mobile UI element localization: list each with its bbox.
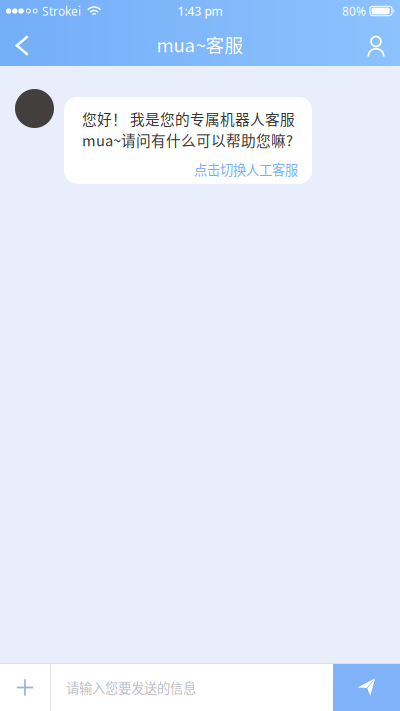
- button[interactable]: Add attachment: [0, 664, 50, 711]
- staticText: 请输入您要发送的信息: [66, 678, 196, 697]
- staticText: 1:43 pm: [177, 3, 222, 19]
- button[interactable]: Send: [333, 664, 400, 711]
- button[interactable]: Back: [0, 22, 44, 66]
- button[interactable]: Account: [354, 22, 398, 66]
- staticText: 点击切换人工客服: [194, 159, 298, 179]
- staticText: Strokei: [42, 3, 81, 19]
- staticText: mua~客服: [156, 30, 243, 57]
- staticText: 您好！ 我是您的专属机器人客服 mua~请问有什么可以帮助您嘛?: [82, 108, 295, 150]
- staticText: 80%: [342, 3, 366, 19]
- button[interactable]: 点击切换人工客服: [194, 159, 298, 179]
